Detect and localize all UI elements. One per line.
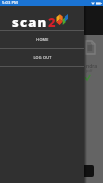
staticText: 5:03 PM bbox=[2, 0, 18, 6]
button[interactable]: LOG OUT bbox=[0, 49, 84, 66]
staticText: 2 bbox=[48, 13, 56, 31]
button[interactable]: Add bbox=[82, 165, 94, 177]
staticText: LOG OUT bbox=[33, 55, 52, 60]
staticText: ndra bbox=[86, 63, 98, 70]
staticText: scan bbox=[12, 13, 48, 31]
staticText: pdf bbox=[86, 68, 93, 73]
staticText: HOME bbox=[36, 37, 49, 42]
button[interactable]: HOME bbox=[0, 31, 84, 48]
